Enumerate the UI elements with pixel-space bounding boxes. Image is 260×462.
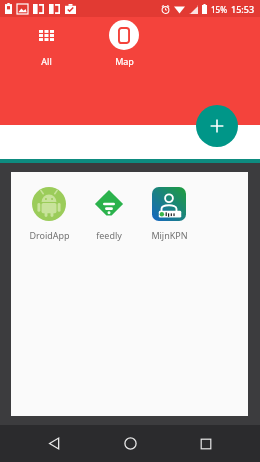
button[interactable]: feedly bbox=[79, 182, 139, 245]
staticText: 15:53 bbox=[231, 3, 255, 15]
button[interactable]: Home bbox=[108, 425, 152, 462]
button[interactable]: MijnKPN bbox=[139, 182, 199, 245]
button[interactable]: Map bbox=[96, 18, 152, 69]
button[interactable]: Add bbox=[196, 105, 238, 147]
staticText: All bbox=[41, 55, 52, 67]
staticText: 15% bbox=[211, 4, 227, 15]
button[interactable]: All bbox=[18, 18, 74, 69]
button[interactable]: Recent apps bbox=[184, 425, 228, 462]
button[interactable]: Back bbox=[32, 425, 76, 462]
staticText: Map bbox=[115, 55, 134, 67]
staticText: DroidApp bbox=[29, 229, 70, 241]
staticText: feedly bbox=[96, 229, 122, 241]
button[interactable]: DroidApp bbox=[19, 182, 79, 245]
staticText: MijnKPN bbox=[151, 229, 188, 241]
